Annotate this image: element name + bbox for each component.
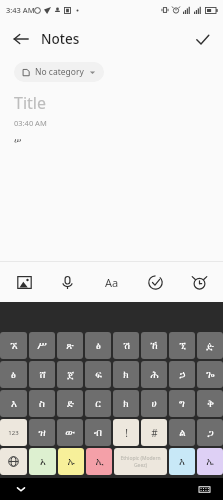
staticText: ዝ (38, 428, 46, 438)
button[interactable]: # (141, 419, 167, 446)
button[interactable]: ኃ (169, 361, 195, 388)
staticText: Ethiopic (Modern Geez) (114, 455, 167, 469)
button[interactable]: Record audio (51, 266, 83, 298)
button[interactable]: ክ (113, 390, 139, 417)
staticText: ኃ (179, 370, 186, 380)
button[interactable]: ፍ (85, 361, 111, 388)
staticText: ቅ (207, 399, 214, 409)
staticText: ኡ (67, 457, 75, 467)
button[interactable]: ሀ (141, 390, 167, 417)
staticText: ኸ (150, 341, 158, 351)
staticText: ክ (123, 399, 129, 409)
button[interactable]: No category (14, 62, 104, 82)
button[interactable]: ፅ (0, 361, 27, 388)
button[interactable]: Ethiopic (Modern Geez) (114, 448, 167, 475)
staticText: ብ (94, 428, 102, 438)
button[interactable]: Back (6, 24, 36, 54)
button[interactable]: ስ (29, 390, 55, 417)
staticText: Notes (41, 30, 80, 48)
button[interactable]: ጋ (197, 419, 223, 446)
staticText: እ (11, 399, 17, 409)
staticText: ኚ (179, 341, 186, 351)
staticText: ፅ (11, 370, 16, 380)
button[interactable]: ጐ (197, 361, 223, 388)
button[interactable]: Text format (95, 266, 127, 298)
button[interactable]: ቅ (197, 390, 223, 417)
button[interactable]: ሥ (29, 332, 55, 359)
button[interactable]: 123 (0, 419, 27, 446)
button[interactable]: አ (29, 448, 56, 475)
staticText: ፍ (95, 370, 102, 380)
button[interactable]: ሸ (29, 361, 55, 388)
staticText: No category (35, 66, 84, 78)
staticText: ግ (179, 399, 185, 409)
button[interactable]: Reminder (183, 266, 215, 298)
staticText: ፅ (96, 341, 101, 351)
staticText: ድ (67, 399, 74, 409)
staticText: ኢ (95, 457, 104, 467)
button[interactable]: ኡ (58, 448, 84, 475)
staticText: Aa (105, 275, 119, 290)
button[interactable]: እ (169, 448, 195, 475)
staticText: ኤ (206, 457, 214, 467)
staticText: # (151, 426, 158, 440)
staticText: እ (179, 457, 185, 467)
staticText: ኧ (10, 341, 18, 351)
button[interactable]: ው (57, 419, 83, 446)
button[interactable]: ሽ (113, 332, 139, 359)
button[interactable]: ኚ (169, 332, 195, 359)
staticText: ሽ (123, 341, 130, 351)
staticText: ጽ (66, 341, 74, 351)
staticText: 3:43 AM (6, 5, 35, 15)
button[interactable]: ኢ (86, 448, 112, 475)
button[interactable]: ጀ (57, 361, 83, 388)
button[interactable]: ኧ (0, 332, 27, 359)
button[interactable]: ዽ (197, 332, 223, 359)
staticText: ! (125, 426, 128, 440)
button[interactable]: ኸ (141, 332, 167, 359)
staticText: ው (65, 428, 75, 438)
button[interactable]: ክ (113, 361, 139, 388)
button[interactable]: ዝ (29, 419, 55, 446)
button[interactable]: Switch keyboard (195, 480, 213, 498)
staticText: ጐ (206, 370, 215, 380)
staticText: ሕ (150, 370, 159, 380)
button[interactable]: ጽ (57, 332, 83, 359)
button[interactable]: ! (113, 419, 139, 446)
staticText: ዽ (206, 341, 214, 351)
button[interactable]: ግ (169, 390, 195, 417)
button[interactable]: ል (169, 419, 195, 446)
staticText: ክ (123, 370, 129, 380)
button[interactable]: Checklist (139, 266, 171, 298)
staticText: 123 (8, 429, 19, 437)
staticText: ል (179, 428, 186, 438)
button[interactable]: ፅ (85, 332, 111, 359)
button[interactable]: Change keyboard (0, 448, 27, 475)
button[interactable]: ድ (57, 390, 83, 417)
staticText: Title (14, 92, 46, 114)
staticText: 03:40 AM (14, 118, 47, 128)
staticText: ሸ (39, 370, 46, 380)
button[interactable]: Insert image (8, 266, 40, 298)
staticText: ጋ (207, 428, 214, 438)
staticText: ሠ (14, 136, 22, 145)
staticText: ጀ (67, 370, 74, 380)
staticText: ስ (39, 399, 45, 409)
staticText: ሀ (151, 399, 157, 409)
button[interactable]: ር (85, 390, 111, 417)
button[interactable]: ብ (85, 419, 111, 446)
button[interactable]: ሕ (141, 361, 167, 388)
staticText: ሥ (37, 341, 47, 351)
button[interactable]: እ (0, 390, 27, 417)
staticText: ር (95, 399, 101, 409)
button[interactable]: Hide keyboard (12, 480, 30, 498)
button[interactable]: Save (187, 24, 217, 54)
staticText: አ (40, 457, 46, 467)
button[interactable]: ኤ (197, 448, 223, 475)
